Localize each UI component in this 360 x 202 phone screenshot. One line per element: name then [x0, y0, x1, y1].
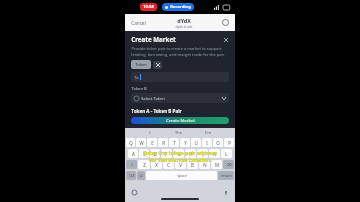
staticText: L: [225, 151, 228, 157]
button[interactable]: V: [175, 160, 186, 169]
button[interactable]: E: [147, 138, 157, 147]
button[interactable]: G: [173, 149, 184, 158]
button[interactable]: K: [209, 149, 220, 158]
staticText: D: [153, 151, 157, 157]
button[interactable]: A: [128, 149, 138, 158]
button[interactable]: P: [224, 138, 234, 147]
button[interactable]: R: [158, 138, 168, 147]
staticText: X: [155, 162, 158, 168]
button[interactable]: Refresh: [221, 18, 230, 27]
button[interactable]: ⌫: [223, 160, 234, 169]
staticText: F: [165, 151, 168, 157]
staticText: A: [132, 151, 135, 157]
staticText: Y: [184, 140, 187, 146]
staticText: I'm: [205, 130, 211, 135]
staticText: R: [162, 140, 165, 146]
button[interactable]: Create Market: [131, 117, 229, 124]
button[interactable]: D: [150, 149, 160, 158]
button[interactable]: Close: [222, 36, 229, 43]
staticText: Provide ticker pair to create a market t…: [131, 46, 222, 51]
staticText: lending, borrowing, and margin trade for…: [131, 52, 225, 57]
staticText: Z: [143, 162, 146, 168]
button[interactable]: L: [221, 149, 232, 158]
staticText: ☺: [139, 174, 143, 178]
staticText: Cancel: [131, 20, 146, 26]
button[interactable]: Cancel: [130, 19, 147, 27]
staticText: for the market creation.: [149, 156, 212, 163]
staticText: Select Token: [141, 96, 165, 101]
button[interactable]: return: [218, 171, 234, 180]
button[interactable]: Y: [180, 138, 190, 147]
staticText: S: [143, 151, 146, 157]
staticText: V: [179, 162, 182, 168]
staticText: dYdX: [177, 17, 191, 24]
button[interactable]: U: [191, 138, 201, 147]
staticText: N: [203, 162, 207, 168]
staticText: Recording: [170, 4, 191, 10]
button[interactable]: S: [139, 149, 149, 158]
button[interactable]: W: [136, 138, 146, 147]
staticText: ⌫: [226, 163, 232, 167]
staticText: E: [151, 140, 154, 146]
staticText: J: [202, 151, 204, 157]
button[interactable]: B: [187, 160, 198, 169]
staticText: Enter the token pair address: [143, 149, 217, 156]
staticText: ⇧: [130, 163, 134, 167]
button[interactable]: ⇧: [126, 160, 137, 169]
button[interactable]: Q: [126, 138, 135, 147]
staticText: Create Market: [166, 118, 195, 124]
button[interactable]: Token: [131, 60, 151, 69]
button[interactable]: space: [146, 171, 217, 180]
staticText: 123: [128, 173, 135, 178]
staticText: H: [189, 151, 193, 157]
button[interactable]: I: [202, 138, 212, 147]
button[interactable]: N: [199, 160, 210, 169]
staticText: K: [213, 151, 216, 157]
button[interactable]: Dictation: [222, 189, 229, 196]
staticText: I: [206, 140, 208, 146]
staticText: for the market creation.: [149, 156, 212, 163]
button[interactable]: T: [169, 138, 179, 147]
button[interactable]: Clear: [153, 61, 162, 69]
button[interactable]: C: [163, 160, 174, 169]
button[interactable]: Z: [138, 160, 150, 169]
staticText: C: [167, 162, 170, 168]
staticText: Create Market: [131, 35, 176, 43]
staticText: P: [228, 140, 231, 146]
staticText: M: [215, 162, 219, 168]
staticText: T: [173, 140, 176, 146]
button[interactable]: F: [161, 149, 172, 158]
staticText: The: [175, 130, 182, 135]
staticText: Token: [135, 62, 147, 67]
staticText: Token B: [131, 86, 147, 91]
staticText: G: [177, 151, 181, 157]
button[interactable]: M: [211, 160, 222, 169]
button[interactable]: J: [197, 149, 208, 158]
button[interactable]: H: [185, 149, 196, 158]
staticText: I: [149, 130, 151, 135]
staticText: return: [221, 173, 232, 178]
button[interactable]: 123: [126, 171, 136, 180]
staticText: space: [177, 173, 187, 178]
staticText: W: [139, 140, 144, 146]
staticText: O: [216, 140, 220, 146]
button[interactable]: Select Token: [131, 93, 229, 103]
staticText: Q: [129, 140, 133, 146]
staticText: B: [191, 162, 194, 168]
staticText: 10:58: [143, 4, 154, 10]
staticText: To: [134, 75, 139, 80]
staticText: Token A - Token B Pair: [131, 108, 182, 114]
button[interactable]: ☺: [137, 171, 145, 180]
button[interactable]: O: [213, 138, 223, 147]
staticText: Enter the token pair address: [143, 149, 217, 156]
staticText: dydx.trade: [175, 24, 193, 29]
button[interactable]: X: [151, 160, 162, 169]
staticText: U: [194, 140, 198, 146]
button[interactable]: To: [131, 72, 229, 82]
button[interactable]: Emoji: [131, 189, 138, 196]
